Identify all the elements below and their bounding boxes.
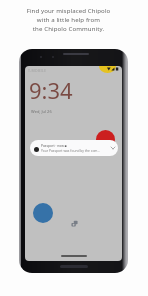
button[interactable]: Camera [70,219,79,228]
staticText: Passport · now ▪ [41,143,67,147]
staticText: 9:34 [29,75,73,105]
staticText: T-MOBILE [28,68,47,73]
button[interactable]: Passport · now ▪ [30,140,118,156]
staticText: Wed, Jul 26 [31,109,52,114]
staticText: Your Passport was found by the com... [41,148,101,152]
button[interactable]: Chipolo app [33,203,53,223]
staticText: Find your misplaced Chipolo with a littl… [0,6,137,33]
